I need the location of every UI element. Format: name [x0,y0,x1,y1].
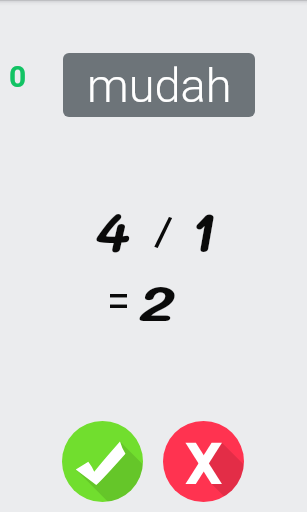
button[interactable]: Correct [62,421,143,502]
staticText: 4 [95,194,131,267]
button[interactable]: Wrong [163,421,244,502]
staticText: 2 [139,270,175,333]
staticText: 1 [190,194,215,267]
staticText: mudah [87,58,232,113]
button[interactable]: mudah [63,53,255,117]
staticText: 0 [9,59,27,94]
